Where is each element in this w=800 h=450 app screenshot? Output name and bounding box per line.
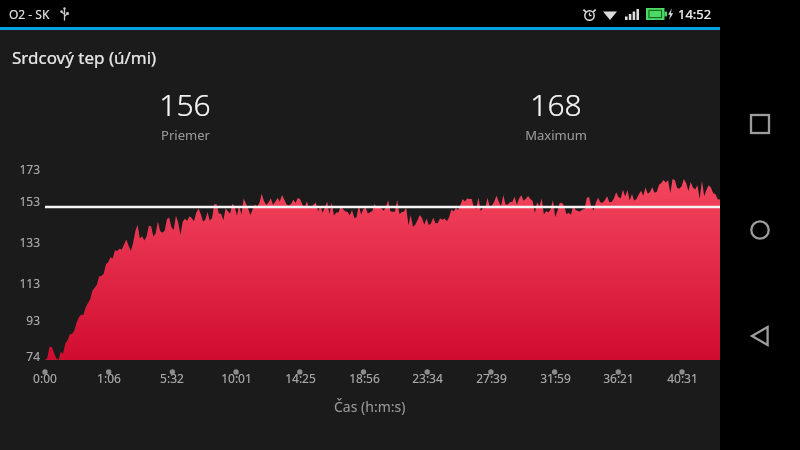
staticText: 156 (159, 84, 211, 125)
button[interactable]: Srdcový tep (ú/mi) (12, 46, 157, 69)
button[interactable]: Back (731, 307, 789, 365)
staticText: 18:56 (349, 370, 380, 386)
staticText: 74 (26, 348, 40, 364)
staticText: 93 (26, 312, 40, 328)
staticText: 40:31 (667, 370, 698, 386)
button[interactable]: Home (731, 201, 789, 259)
button[interactable]: Recents (731, 95, 789, 153)
staticText: 153 (19, 193, 40, 209)
staticText: 173 (19, 161, 40, 177)
button[interactable]: 168 (496, 84, 616, 144)
staticText: 168 (530, 84, 582, 125)
staticText: 14:25 (285, 370, 316, 386)
staticText: Maximum (525, 126, 587, 144)
button[interactable]: 156 (125, 84, 245, 144)
staticText: 27:39 (476, 370, 507, 386)
staticText: 14:52 (678, 5, 712, 23)
staticText: 1:06 (97, 370, 121, 386)
staticText: 0:00 (33, 370, 57, 386)
staticText: 133 (19, 234, 40, 250)
staticText: 10:01 (221, 370, 252, 386)
staticText: 113 (19, 275, 40, 291)
staticText: 23:34 (412, 370, 443, 386)
staticText: 5:32 (160, 370, 184, 386)
staticText: 31:59 (540, 370, 571, 386)
staticText: Čas (h:m:s) (334, 397, 406, 416)
staticText: O2 - SK (9, 6, 50, 22)
staticText: Priemer (161, 126, 210, 144)
staticText: 36:21 (603, 370, 634, 386)
